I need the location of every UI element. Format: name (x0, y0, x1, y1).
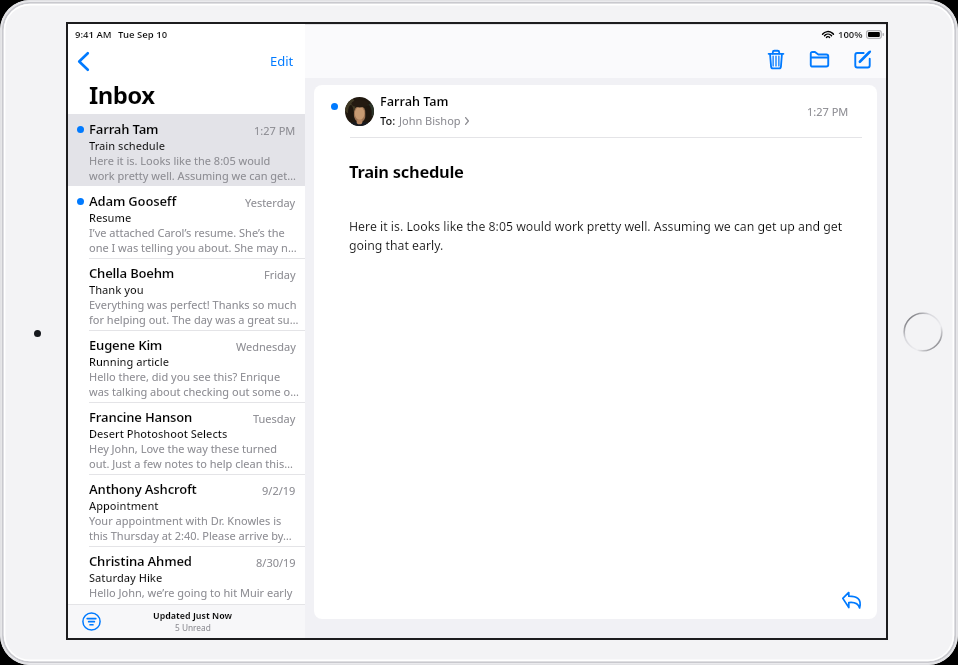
staticText: Updated Just Now (153, 610, 233, 622)
staticText: Eugene Kim (89, 336, 163, 354)
staticText: Friday (264, 267, 296, 282)
staticText: Everything was perfect! Thanks so much (89, 297, 297, 312)
staticText: I’ve attached Carol’s resume. She’s the (89, 225, 285, 240)
button[interactable]: Compose (845, 42, 879, 76)
button[interactable]: Chella Boehm (68, 258, 305, 330)
staticText: Farrah Tam (89, 120, 159, 138)
staticText: Appointment (89, 498, 159, 513)
staticText: Here it is. Looks like the 8:05 would (89, 153, 271, 168)
staticText: for helping out. The day was a great su… (89, 312, 299, 327)
button[interactable]: Farrah Tam (68, 114, 305, 186)
staticText: Christina Ahmed (89, 552, 192, 570)
staticText: 5 Unread (175, 622, 211, 633)
staticText: 1:27 PM (254, 123, 296, 138)
staticText: Train schedule (89, 138, 166, 153)
staticText: this Thursday at 2:40. Please arrive by… (89, 528, 292, 543)
staticText: Farrah Tam (380, 93, 449, 110)
staticText: Adam Gooseff (89, 192, 177, 210)
button[interactable]: Eugene Kim (68, 330, 305, 402)
staticText: work pretty well. Assuming we can get… (89, 168, 296, 183)
button[interactable]: Filter (78, 608, 104, 634)
staticText: Chella Boehm (89, 264, 175, 282)
staticText: Hey John, Love the way these turned (89, 441, 278, 456)
button[interactable]: Francine Hanson (68, 402, 305, 474)
staticText: was talking about checking out some o… (89, 384, 299, 399)
staticText: John Bishop (399, 113, 461, 128)
button[interactable]: Edit (265, 48, 299, 74)
staticText: Francine Hanson (89, 408, 193, 426)
staticText: Train schedule (349, 160, 464, 182)
button[interactable]: Move to folder (802, 42, 836, 76)
staticText: Your appointment with Dr. Knowles is (89, 513, 282, 528)
staticText: Hello there, did you see this? Enrique (89, 369, 281, 384)
staticText: Yesterday (245, 195, 296, 210)
staticText: Running article (89, 354, 170, 369)
staticText: 1:27 PM (807, 104, 849, 119)
staticText: Saturday Hike (89, 570, 163, 585)
button[interactable]: Back (68, 46, 98, 76)
button[interactable]: Delete (759, 42, 793, 76)
staticText: Tuesday (253, 411, 296, 426)
button[interactable]: Anthony Ashcroft (68, 474, 305, 546)
staticText: Hello John, we’re going to hit Muir earl… (89, 585, 293, 600)
staticText: Desert Photoshoot Selects (89, 426, 228, 441)
staticText: Wednesday (236, 339, 296, 354)
button[interactable]: Reply (834, 582, 870, 618)
button[interactable]: Christina Ahmed (68, 546, 305, 604)
staticText: out. Just a few notes to help clean this… (89, 456, 293, 471)
staticText: one I was telling you about. She may n… (89, 240, 297, 255)
staticText: Edit (270, 52, 294, 70)
staticText: Anthony Ashcroft (89, 480, 197, 498)
staticText: 8/30/19 (256, 555, 296, 570)
staticText: 100% (838, 28, 863, 41)
button[interactable]: Adam Gooseff (68, 186, 305, 258)
staticText: 9:41 AM (75, 28, 112, 41)
staticText: Inbox (89, 78, 155, 111)
staticText: Resume (89, 210, 132, 225)
staticText: Here it is. Looks like the 8:05 would wo… (349, 218, 863, 254)
button[interactable]: To: (380, 112, 469, 129)
staticText: 9/2/19 (262, 483, 296, 498)
staticText: Tue Sep 10 (118, 28, 168, 41)
staticText: To: (380, 113, 396, 128)
staticText: Thank you (89, 282, 144, 297)
